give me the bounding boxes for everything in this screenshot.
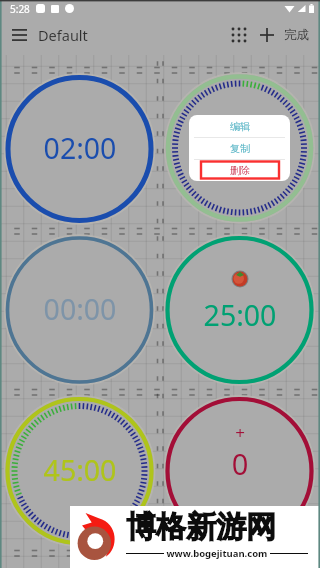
button[interactable]: 复制: [189, 138, 290, 159]
button[interactable]: Timer 02:00: [4, 74, 155, 225]
staticText: 0: [180, 444, 300, 483]
staticText: 5:28: [10, 2, 30, 16]
staticText: 完成: [284, 27, 309, 43]
staticText: www.bogejituan.com: [164, 547, 270, 560]
button[interactable]: Timer 45:00: [4, 396, 155, 547]
button[interactable]: Timer 00:00: [4, 235, 155, 386]
staticText: 45:00: [20, 451, 140, 490]
button[interactable]: Add timer: [255, 23, 279, 47]
button[interactable]: 删除: [189, 160, 290, 181]
staticText: +: [180, 421, 300, 444]
button[interactable]: Menu: [4, 20, 34, 50]
button[interactable]: 完成: [282, 21, 311, 49]
staticText: 00:00: [20, 290, 140, 329]
button[interactable]: Apps grid: [227, 23, 251, 47]
staticText: 复制: [230, 142, 250, 155]
staticText: 博格新游网: [126, 508, 276, 546]
button[interactable]: Add new timer: [164, 396, 315, 547]
staticText: 02:00: [20, 129, 140, 168]
staticText: 25:00: [180, 296, 300, 335]
button[interactable]: 编辑: [189, 115, 290, 137]
staticText: Default: [38, 25, 88, 45]
button[interactable]: Timer with progress: [164, 73, 315, 224]
staticText: 编辑: [230, 120, 250, 133]
staticText: 删除: [230, 164, 250, 177]
button[interactable]: Pomodoro 25:00: [164, 235, 315, 386]
